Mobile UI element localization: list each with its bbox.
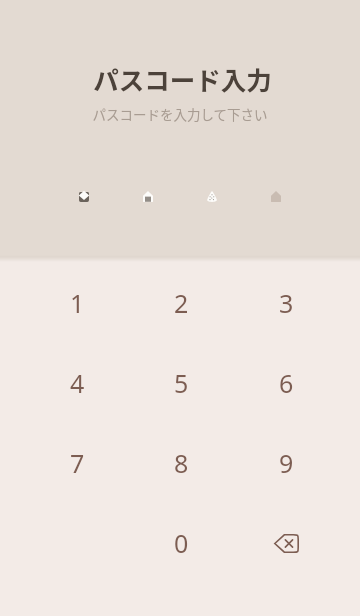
staticText: 7: [70, 446, 85, 480]
button[interactable]: 6: [234, 343, 339, 423]
button[interactable]: 5: [129, 343, 234, 423]
button[interactable]: 3: [234, 263, 339, 343]
button[interactable]: 9: [234, 423, 339, 503]
staticText: パスコード入力: [93, 60, 272, 97]
staticText: 2: [174, 286, 189, 320]
staticText: パスコードを入力して下さい: [92, 104, 268, 124]
staticText: 0: [174, 526, 189, 560]
button[interactable]: 4: [25, 343, 129, 423]
button[interactable]: 8: [129, 423, 234, 503]
button[interactable]: 0: [129, 503, 234, 583]
button[interactable]: Delete: [234, 503, 339, 583]
staticText: 8: [174, 446, 189, 480]
staticText: 9: [279, 446, 294, 480]
staticText: 1: [70, 286, 85, 320]
staticText: 5: [174, 366, 189, 400]
staticText: 3: [279, 286, 294, 320]
staticText: 4: [70, 366, 85, 400]
button[interactable]: 1: [25, 263, 129, 343]
button[interactable]: 2: [129, 263, 234, 343]
button[interactable]: 7: [25, 423, 129, 503]
staticText: 6: [279, 366, 294, 400]
